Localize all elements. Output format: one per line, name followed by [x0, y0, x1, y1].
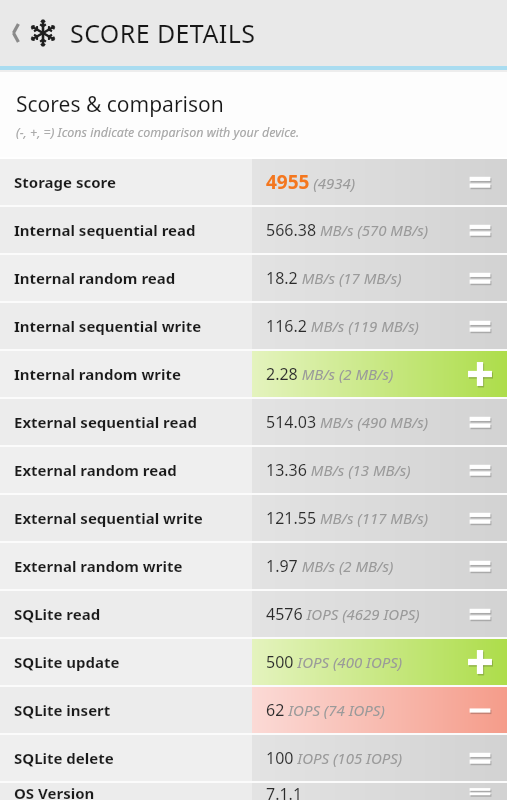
- staticText: SQLite insert: [14, 700, 111, 720]
- staticText: External random write: [14, 556, 183, 576]
- other: Equal to your device: [467, 217, 493, 243]
- button[interactable]: Internal random read: [0, 255, 507, 301]
- other: Equal to your device: [467, 457, 493, 483]
- button[interactable]: SQLite update: [0, 639, 507, 685]
- staticText: Internal sequential write: [14, 316, 202, 336]
- staticText: External sequential read: [14, 412, 197, 432]
- other: Better than your device: [467, 361, 493, 387]
- button[interactable]: External random write: [0, 543, 507, 589]
- staticText: 62 IOPS (74 IOPS): [266, 699, 385, 721]
- staticText: Storage score: [14, 172, 116, 192]
- staticText: 7.1.1: [266, 783, 303, 800]
- other: Back: [6, 18, 26, 48]
- staticText: Internal sequential read: [14, 220, 196, 240]
- other: Equal to your device: [467, 505, 493, 531]
- button[interactable]: Storage score: [0, 159, 507, 205]
- staticText: SQLite delete: [14, 748, 114, 768]
- button[interactable]: SQLite delete: [0, 735, 507, 781]
- staticText: External sequential write: [14, 508, 203, 528]
- staticText: Scores & comparison: [16, 90, 224, 119]
- staticText: 116.2 MB/s (119 MB/s): [266, 315, 419, 337]
- staticText: SQLite update: [14, 652, 120, 672]
- staticText: 2.28 MB/s (2 MB/s): [266, 363, 394, 385]
- button[interactable]: External sequential read: [0, 399, 507, 445]
- staticText: 13.36 MB/s (13 MB/s): [266, 459, 411, 481]
- staticText: SQLite read: [14, 604, 101, 624]
- staticText: Internal random read: [14, 268, 176, 288]
- staticText: 1.97 MB/s (2 MB/s): [266, 555, 394, 577]
- staticText: 121.55 MB/s (117 MB/s): [266, 507, 429, 529]
- other: Better than your device: [467, 649, 493, 675]
- other: Equal to your device: [467, 265, 493, 291]
- staticText: 514.03 MB/s (490 MB/s): [266, 411, 429, 433]
- other: Equal to your device: [467, 745, 493, 771]
- other: Equal to your device: [467, 783, 493, 800]
- button[interactable]: SQLite read: [0, 591, 507, 637]
- button[interactable]: Internal random write: [0, 351, 507, 397]
- other: Worse than your device: [467, 697, 493, 723]
- staticText: (-, +, =) Icons indicate comparison with…: [16, 124, 300, 141]
- staticText: 100 IOPS (105 IOPS): [266, 747, 403, 769]
- staticText: 500 IOPS (400 IOPS): [266, 651, 403, 673]
- button[interactable]: External random read: [0, 447, 507, 493]
- button[interactable]: Internal sequential write: [0, 303, 507, 349]
- button[interactable]: Internal sequential read: [0, 207, 507, 253]
- button[interactable]: SQLite insert: [0, 687, 507, 733]
- staticText: Internal random write: [14, 364, 181, 384]
- staticText: OS Version: [14, 783, 95, 800]
- staticText: External random read: [14, 460, 177, 480]
- other: Equal to your device: [467, 553, 493, 579]
- button[interactable]: External sequential write: [0, 495, 507, 541]
- other: Equal to your device: [467, 313, 493, 339]
- other: Equal to your device: [467, 601, 493, 627]
- other: Equal to your device: [467, 409, 493, 435]
- button[interactable]: Back: [0, 0, 507, 66]
- button[interactable]: OS Version: [0, 783, 507, 800]
- staticText: SCORE DETAILS: [70, 16, 256, 50]
- other: Equal to your device: [467, 169, 493, 195]
- staticText: 4955 (4934): [266, 169, 356, 195]
- staticText: 18.2 MB/s (17 MB/s): [266, 267, 402, 289]
- staticText: 4576 IOPS (4629 IOPS): [266, 603, 420, 625]
- staticText: 566.38 MB/s (570 MB/s): [266, 219, 429, 241]
